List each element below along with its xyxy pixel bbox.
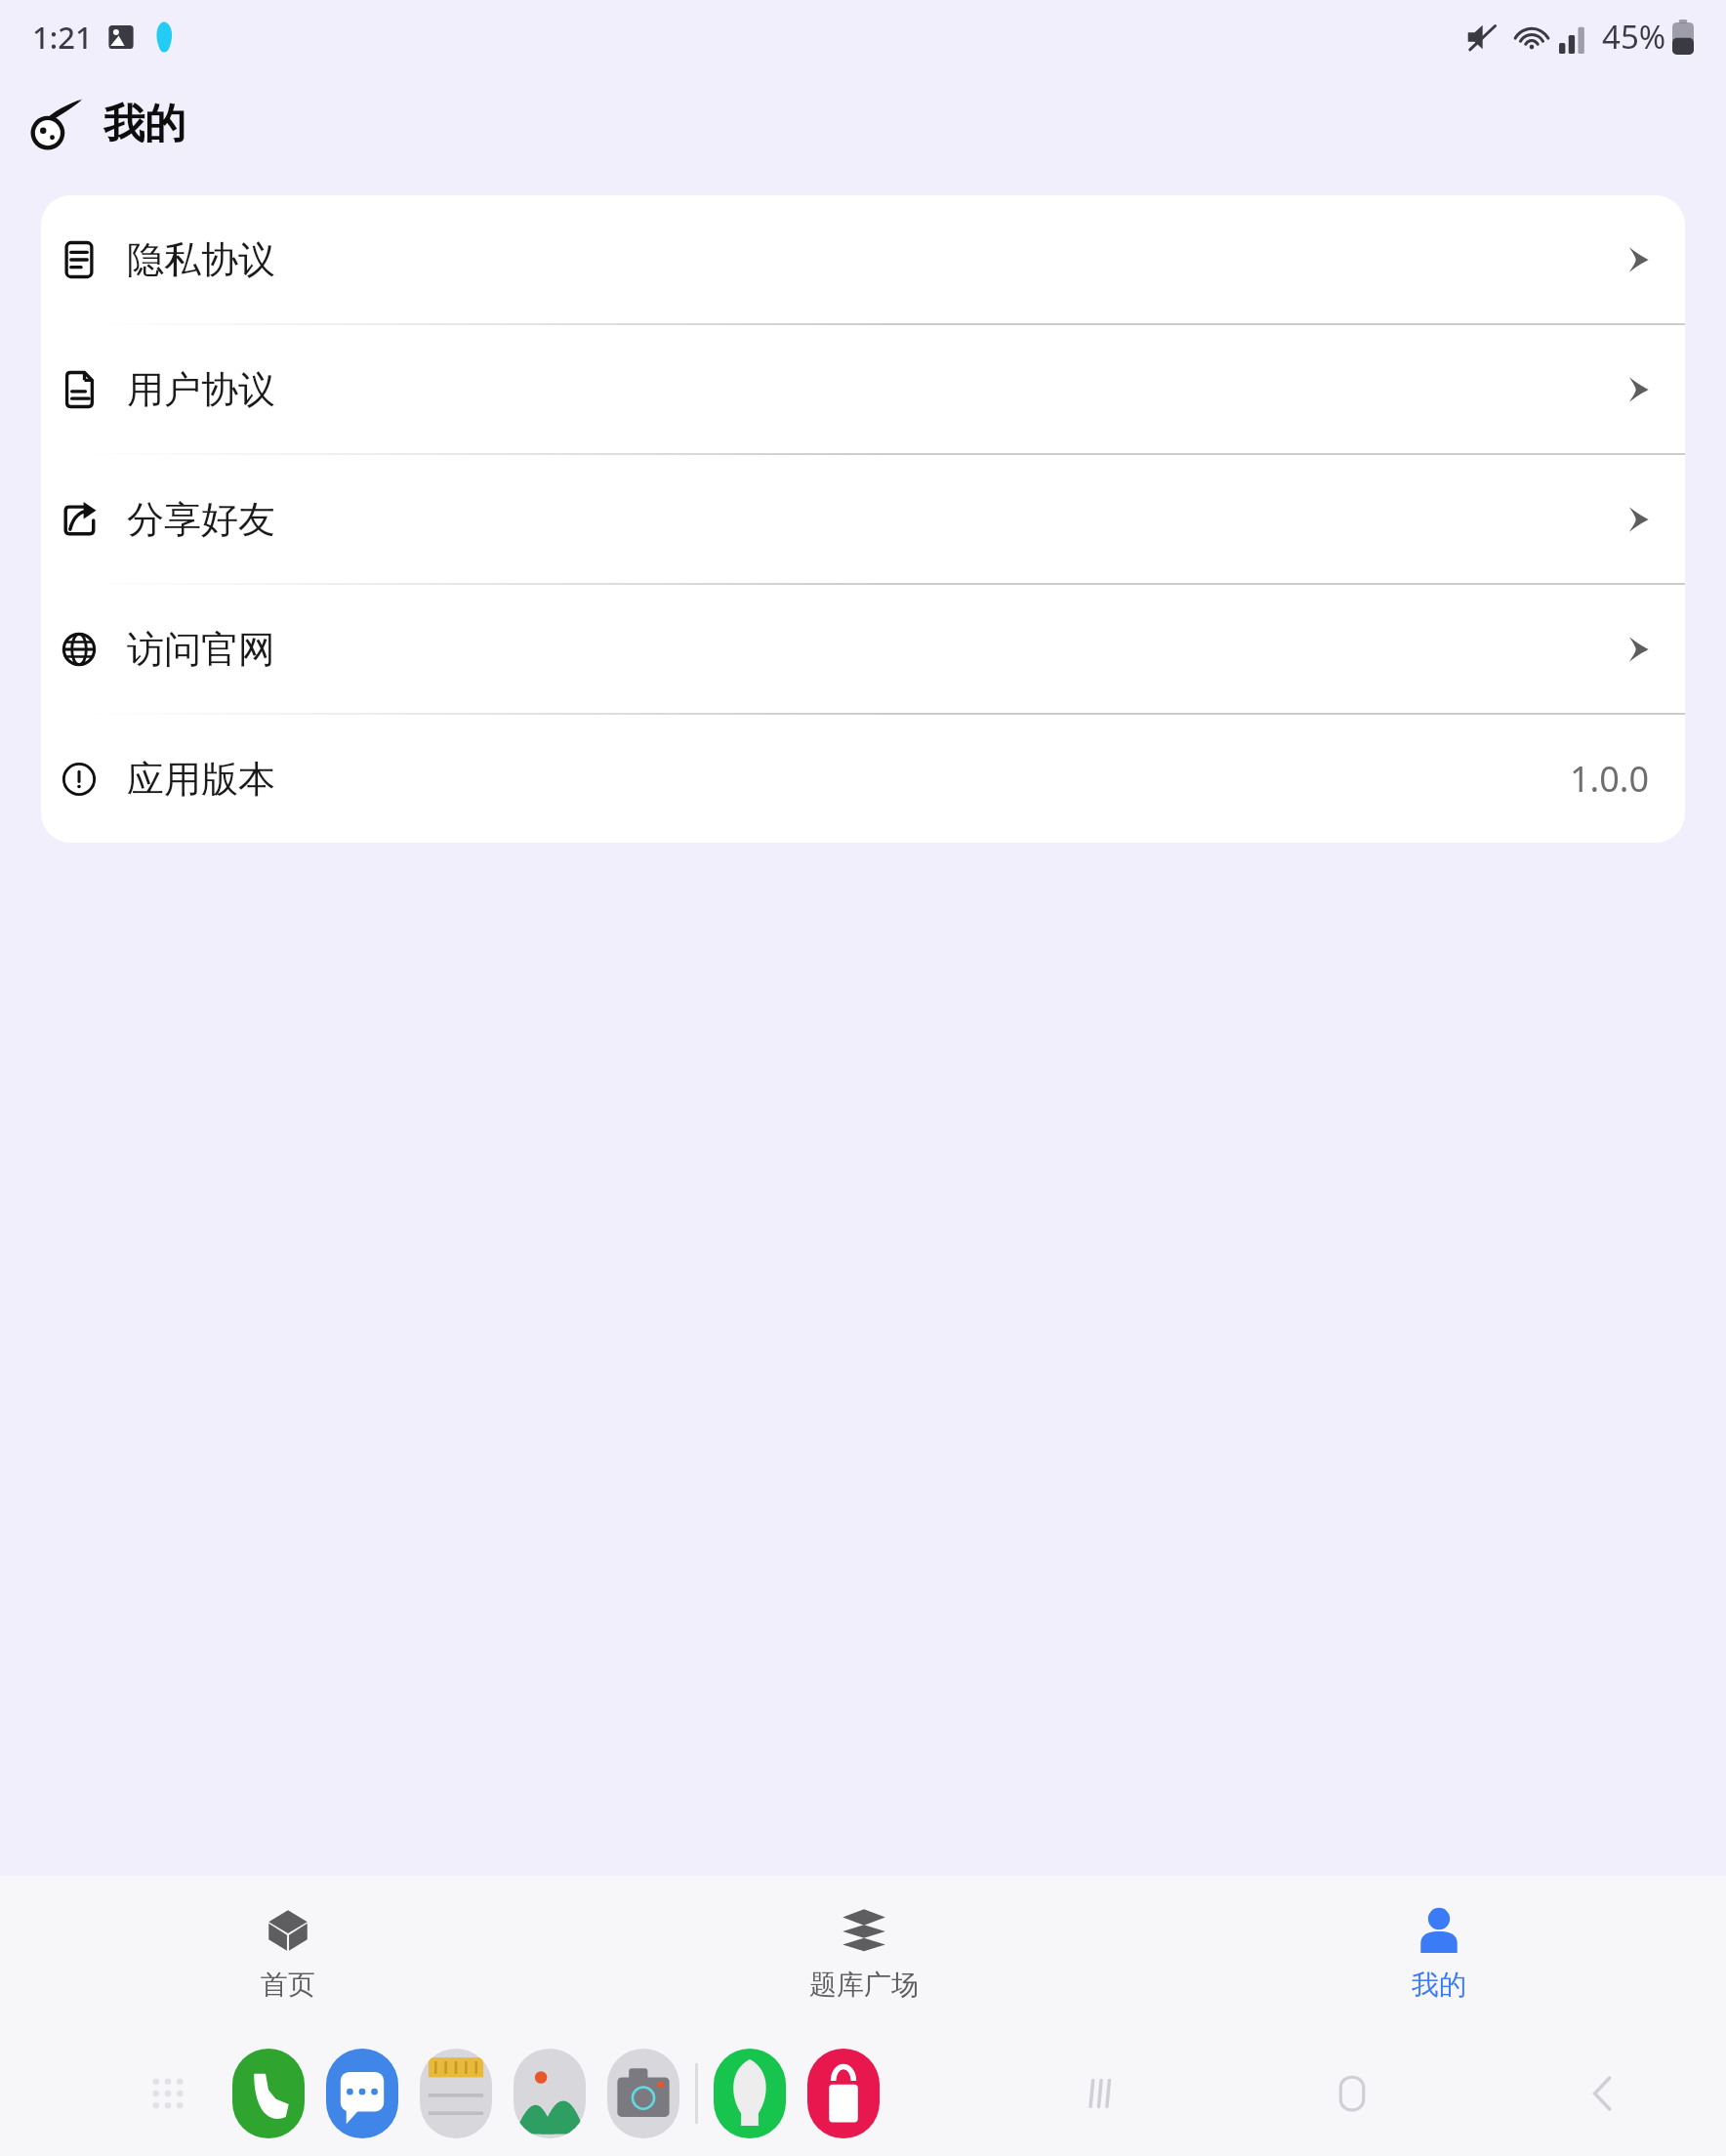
button[interactable]: App (232, 2049, 305, 2138)
button[interactable]: 用户协议 (41, 325, 1685, 453)
staticText: 隐私协议 (127, 236, 275, 283)
staticText: 45% (1602, 15, 1666, 59)
button[interactable]: 访问官网 (41, 585, 1685, 713)
button[interactable]: 分享好友 (41, 455, 1685, 583)
staticText: 访问官网 (127, 626, 275, 673)
button[interactable]: App (714, 2049, 786, 2138)
button[interactable]: Recents (1072, 2064, 1130, 2123)
staticText: 题库广场 (809, 1968, 919, 2002)
staticText: 首页 (261, 1968, 315, 2002)
button[interactable]: 我的 (1151, 1876, 1726, 2031)
staticText: 分享好友 (127, 496, 275, 543)
staticText: 1.0.0 (1570, 755, 1650, 803)
button[interactable]: App (514, 2049, 586, 2138)
button[interactable]: App (420, 2049, 492, 2138)
button[interactable]: Back (1574, 2064, 1632, 2123)
button[interactable]: 隐私协议 (41, 195, 1685, 323)
button[interactable]: App (807, 2049, 880, 2138)
staticText: 用户协议 (127, 366, 275, 413)
button[interactable]: 首页 (0, 1876, 576, 2031)
button[interactable]: 题库广场 (576, 1876, 1151, 2031)
button[interactable]: App (326, 2049, 398, 2138)
button[interactable]: App (607, 2049, 679, 2138)
button[interactable]: Home (1323, 2064, 1381, 2123)
staticText: 应用版本 (127, 756, 275, 803)
button[interactable]: 应用版本 (41, 715, 1685, 843)
staticText: 我的 (1412, 1968, 1466, 2002)
staticText: 我的 (103, 99, 185, 150)
staticText: 1:21 (32, 17, 93, 58)
